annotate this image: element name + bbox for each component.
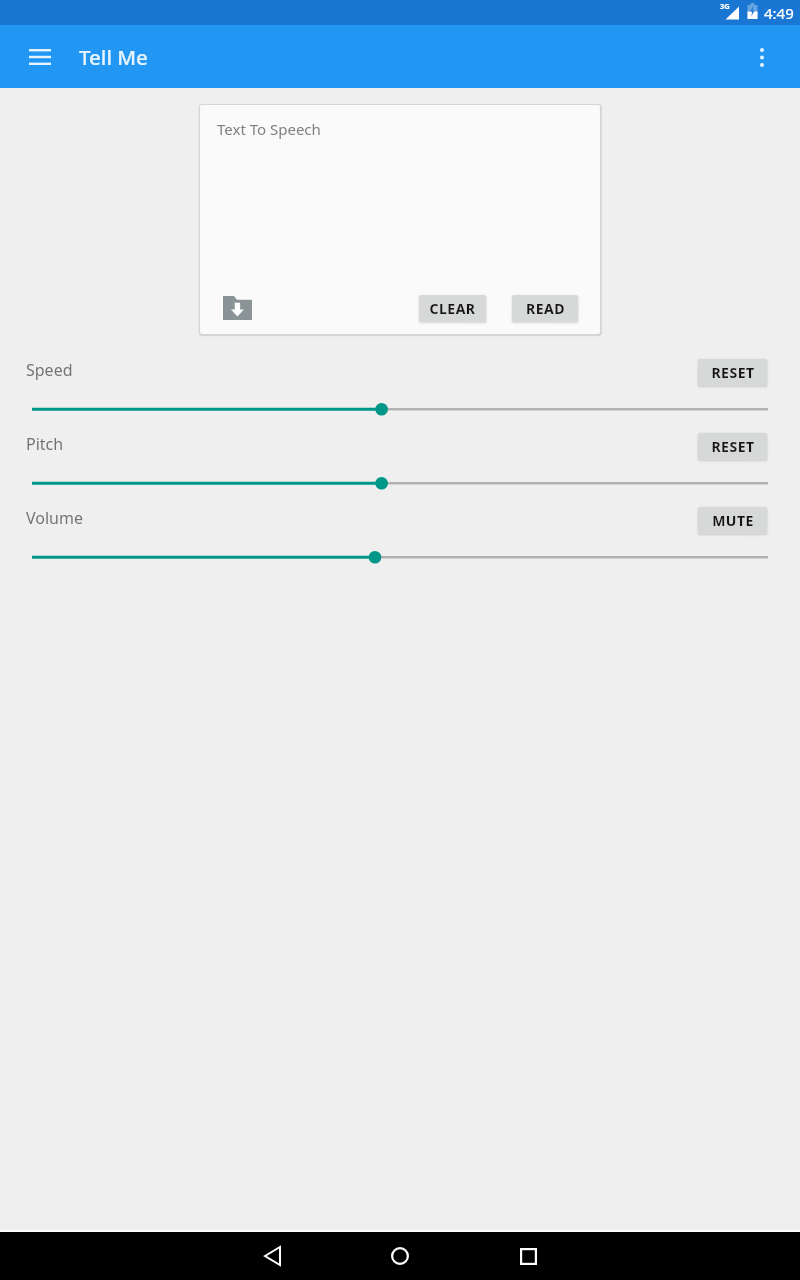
staticText: Speed bbox=[26, 359, 73, 381]
button[interactable]: Home bbox=[370, 1232, 430, 1280]
staticText: MUTE bbox=[712, 511, 754, 530]
button[interactable]: Back bbox=[242, 1232, 302, 1280]
staticText: CLEAR bbox=[429, 299, 476, 318]
staticText: RESET bbox=[711, 437, 755, 456]
button[interactable]: Speed slider bbox=[0, 396, 800, 422]
staticText: READ bbox=[526, 299, 565, 318]
staticText: Volume bbox=[26, 507, 83, 529]
button[interactable]: Open navigation menu bbox=[16, 33, 64, 81]
button[interactable]: Recent apps bbox=[498, 1232, 558, 1280]
staticText: RESET bbox=[711, 363, 755, 382]
button[interactable]: RESET bbox=[698, 433, 767, 460]
staticText: 4:49 bbox=[764, 3, 794, 23]
button[interactable]: Volume slider bbox=[0, 544, 800, 570]
button[interactable]: RESET bbox=[698, 359, 767, 386]
button[interactable]: READ bbox=[512, 295, 578, 322]
button[interactable]: Load text from file bbox=[219, 292, 256, 324]
staticText: Pitch bbox=[26, 433, 64, 455]
button[interactable]: More options bbox=[742, 37, 782, 77]
button[interactable]: Pitch slider bbox=[0, 470, 800, 496]
staticText: Tell Me bbox=[79, 43, 148, 71]
staticText: 3G bbox=[720, 1, 730, 11]
button[interactable]: MUTE bbox=[698, 507, 767, 534]
staticText: Text To Speech bbox=[217, 119, 321, 139]
button[interactable]: Text to speech input bbox=[200, 105, 600, 287]
button[interactable]: CLEAR bbox=[419, 295, 486, 322]
